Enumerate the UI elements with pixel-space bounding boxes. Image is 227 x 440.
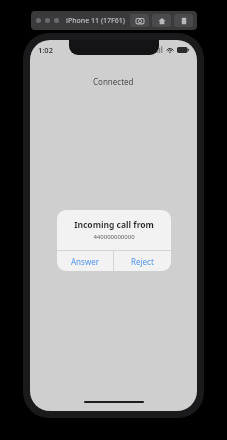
button[interactable]: Answer: [57, 251, 113, 271]
button[interactable]: Screenshot: [130, 14, 149, 27]
staticText: 440000000000: [93, 233, 135, 241]
button[interactable]: Window control: [54, 18, 59, 23]
staticText: Reject: [131, 256, 154, 267]
staticText: 1:02: [38, 45, 53, 55]
button[interactable]: Rotate: [174, 14, 193, 27]
staticText: Answer: [71, 256, 99, 267]
button[interactable]: Window control: [36, 18, 41, 23]
staticText: Connected: [93, 76, 134, 87]
staticText: Incoming call from: [74, 219, 154, 231]
button[interactable]: Window control: [45, 18, 50, 23]
button[interactable]: Reject: [114, 251, 171, 271]
button[interactable]: Home: [152, 14, 171, 27]
staticText: iPhone 11 (17F61): [66, 16, 125, 26]
